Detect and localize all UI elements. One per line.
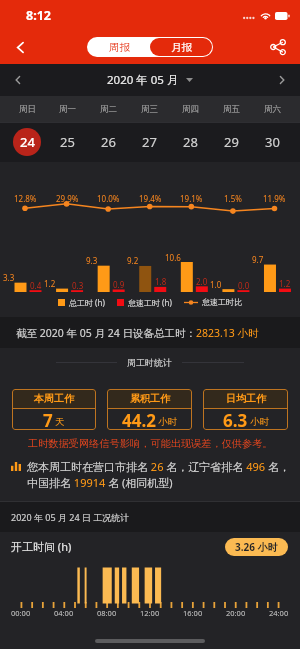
button[interactable]: Back — [0, 30, 40, 64]
staticText: 29 — [224, 133, 239, 151]
button[interactable]: 累积工作 — [107, 389, 192, 430]
staticText: 月报 — [171, 41, 192, 54]
staticText: 1.0 — [210, 279, 222, 290]
staticText: 8:12 — [26, 7, 51, 24]
staticText: 开工时间 (h) — [11, 539, 72, 554]
staticText: 04:00 — [54, 608, 74, 618]
staticText: 12.8% — [14, 193, 37, 204]
staticText: 周三 — [141, 104, 158, 115]
button[interactable]: Previous month — [0, 64, 36, 96]
staticText: 9.3 — [86, 255, 98, 266]
staticText: 0.3 — [72, 280, 84, 291]
staticText: 1.2 — [44, 278, 56, 289]
staticText: 周一 — [59, 104, 76, 115]
staticText: 2020 年 05 月 24 日 工况统计 — [11, 511, 130, 523]
staticText: 00:00 — [11, 608, 31, 618]
staticText: 6.3 — [223, 409, 248, 430]
staticText: 19.1% — [180, 193, 203, 204]
staticText: 10.6 — [165, 252, 181, 263]
staticText: 24 — [20, 133, 35, 151]
button[interactable]: 日均工作 — [203, 389, 288, 430]
staticText: 截至 2020 年 05 月 24 日设备总工时： — [16, 326, 196, 340]
staticText: 27 — [142, 133, 157, 151]
staticText: 2020 年 05 月 — [107, 72, 179, 88]
staticText: 44.2 — [122, 409, 156, 430]
staticText: 怠速工时 (h) — [128, 297, 172, 308]
staticText: 30 — [265, 133, 280, 151]
staticText: 12:00 — [140, 608, 160, 618]
staticText: 19.4% — [139, 193, 162, 204]
staticText: 20:00 — [226, 608, 246, 618]
staticText: 您本周工时在营口市排名 26 名，辽宁省排名 496 名，中国排名 19914 … — [27, 459, 292, 490]
staticText: 累积工作 — [130, 392, 170, 405]
staticText: 2823.13 小时 — [196, 326, 259, 340]
staticText: 日均工作 — [226, 392, 266, 405]
staticText: 工时数据受网络信号影响，可能出现误差，仅供参考。 — [28, 437, 273, 450]
button[interactable]: 2020 年 05 月 — [107, 72, 193, 88]
button[interactable]: 本周工作 — [12, 389, 96, 430]
button[interactable]: 周报 — [88, 38, 150, 56]
staticText: 天 — [55, 416, 65, 428]
staticText: 7 — [43, 409, 53, 430]
staticText: 9.7 — [252, 254, 264, 265]
staticText: 10.0% — [97, 193, 120, 204]
button[interactable]: 30 — [252, 122, 293, 162]
staticText: 0.9 — [113, 279, 125, 290]
button[interactable]: 24 — [7, 122, 47, 162]
staticText: 3.26 小时 — [235, 540, 278, 554]
staticText: 26 — [101, 133, 116, 151]
staticText: 小时 — [250, 416, 269, 428]
button[interactable]: Share — [256, 30, 300, 64]
staticText: 25 — [60, 133, 75, 151]
button[interactable]: 28 — [170, 122, 211, 162]
button[interactable]: 月报 — [150, 38, 212, 56]
button[interactable]: 29 — [211, 122, 252, 162]
button[interactable]: Next month — [264, 64, 300, 96]
staticText: 1.2 — [279, 278, 291, 289]
staticText: 11.9% — [263, 193, 286, 204]
staticText: 总工时 (h) — [69, 297, 105, 308]
staticText: 24:00 — [269, 608, 289, 618]
staticText: 怠速工时比 — [202, 297, 242, 307]
button[interactable]: 3.26 小时 — [225, 538, 288, 556]
staticText: 周工时统计 — [127, 357, 172, 368]
staticText: 本周工作 — [34, 392, 74, 405]
staticText: 2.0 — [196, 276, 208, 287]
staticText: 08:00 — [97, 608, 117, 618]
staticText: 9.2 — [127, 255, 139, 266]
staticText: 3.3 — [3, 272, 15, 283]
button[interactable]: 26 — [88, 122, 129, 162]
staticText: 0.4 — [30, 280, 42, 291]
staticText: 29.9% — [56, 193, 79, 204]
staticText: 周二 — [100, 104, 117, 115]
staticText: 周五 — [223, 104, 240, 115]
button[interactable]: 27 — [129, 122, 170, 162]
staticText: 28 — [183, 133, 198, 151]
staticText: 0.0 — [238, 280, 250, 291]
staticText: 周六 — [264, 104, 281, 115]
staticText: 1.8 — [155, 276, 167, 287]
staticText: 1.5% — [224, 193, 242, 204]
staticText: 16:00 — [183, 608, 203, 618]
staticText: 周报 — [109, 41, 130, 54]
staticText: 小时 — [158, 416, 177, 428]
staticText: 周四 — [182, 104, 199, 115]
button[interactable]: 25 — [47, 122, 88, 162]
staticText: 周日 — [19, 104, 36, 115]
